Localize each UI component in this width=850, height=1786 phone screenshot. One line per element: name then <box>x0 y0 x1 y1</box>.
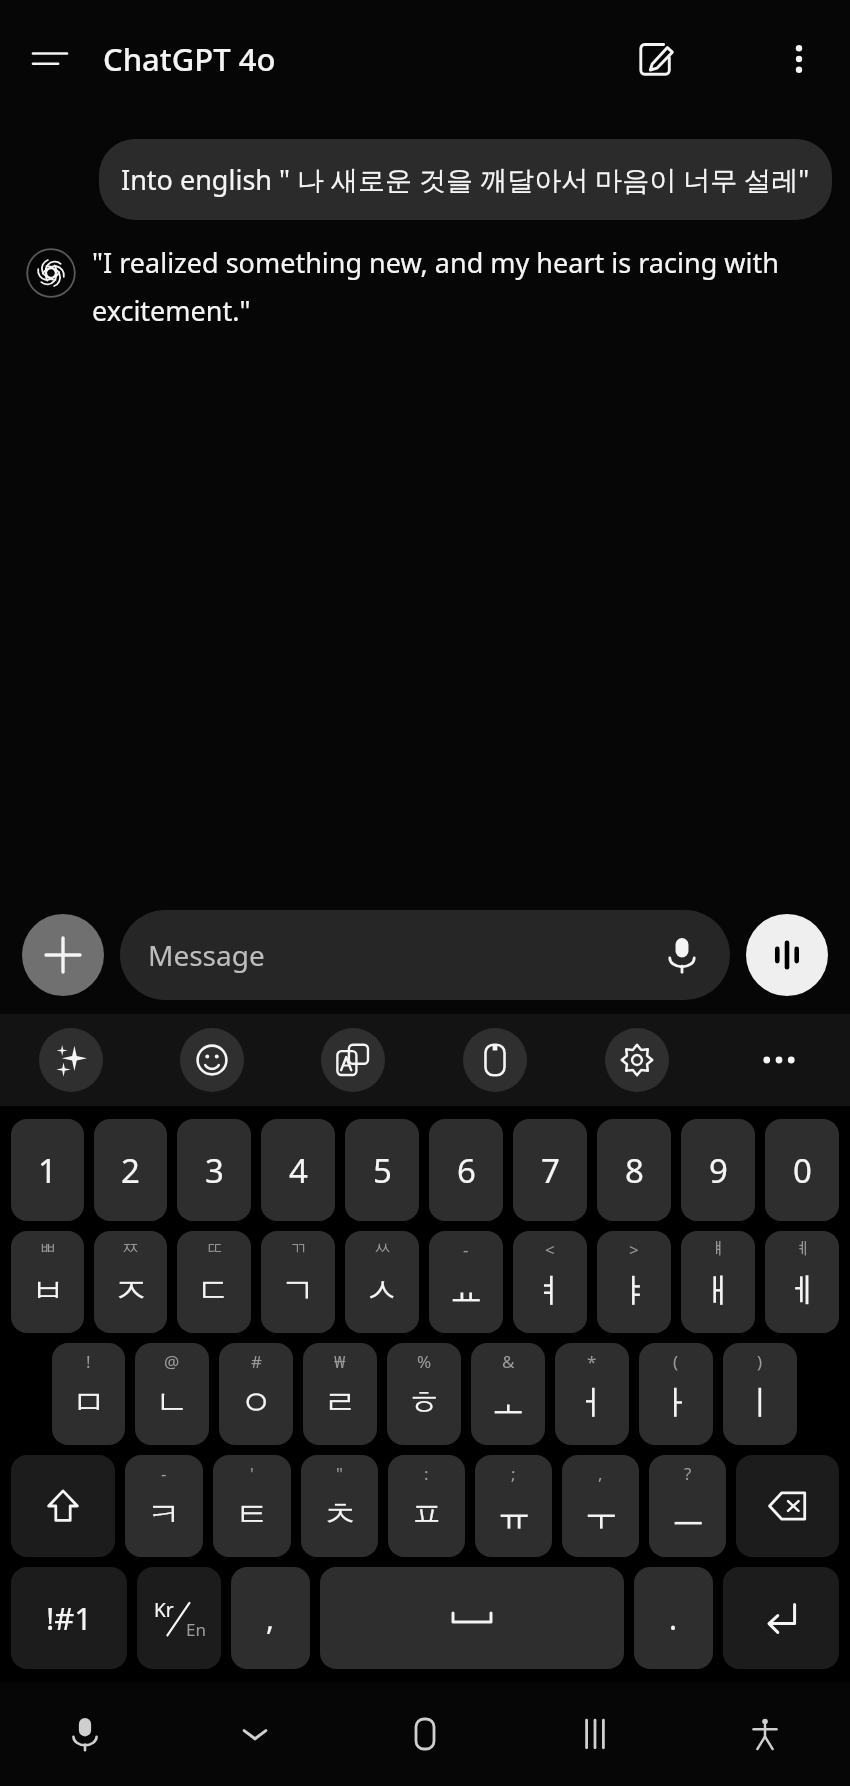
button[interactable]: More options <box>768 28 830 90</box>
button[interactable]: Keyboard settings <box>605 1028 669 1092</box>
button[interactable]: Shift <box>11 1455 115 1557</box>
staticText: ( <box>673 1350 679 1373</box>
button[interactable]: 0 <box>765 1119 839 1221</box>
button[interactable]: 2 <box>94 1119 167 1221</box>
button[interactable]: Voice input <box>656 929 708 981</box>
button[interactable]: Menu <box>20 29 80 89</box>
button[interactable]: New chat <box>622 25 690 93</box>
staticText: Into english " 나 새로운 것을 깨달아서 마음이 너무 설레" <box>121 161 810 198</box>
button[interactable]: ㅒ <box>681 1231 755 1333</box>
staticText: ㅡ <box>671 1493 705 1536</box>
staticText: ㄸ <box>206 1238 223 1259</box>
staticText: 8 <box>625 1148 644 1193</box>
button[interactable]: . <box>634 1567 713 1669</box>
staticText: @ <box>164 1350 180 1373</box>
staticText: 2 <box>121 1148 140 1193</box>
button[interactable]: % <box>387 1343 461 1445</box>
button[interactable]: 8 <box>597 1119 671 1221</box>
button[interactable]: < <box>513 1231 587 1333</box>
staticText: , <box>266 1598 275 1639</box>
staticText: % <box>417 1350 432 1373</box>
staticText: ㅠ <box>497 1493 531 1536</box>
button[interactable]: Emoji <box>180 1028 244 1092</box>
button[interactable]: " <box>301 1455 378 1557</box>
staticText: Message <box>148 936 656 974</box>
staticText: < <box>545 1238 555 1261</box>
staticText: - <box>161 1462 167 1485</box>
button[interactable]: Message <box>120 910 730 1000</box>
staticText: 9 <box>709 1148 728 1193</box>
button[interactable]: ㅆ <box>345 1231 419 1333</box>
staticText: & <box>502 1350 515 1373</box>
button[interactable]: Translate <box>321 1028 385 1092</box>
button[interactable]: & <box>471 1343 545 1445</box>
staticText: ㅃ <box>39 1238 56 1259</box>
button[interactable]: Clipboard <box>463 1028 527 1092</box>
button[interactable]: 9 <box>681 1119 755 1221</box>
button[interactable]: @ <box>135 1343 209 1445</box>
staticText: "I realized something new, and my heart … <box>92 244 826 329</box>
staticText: ㅋ <box>147 1493 181 1536</box>
button[interactable]: ㅉ <box>94 1231 167 1333</box>
button[interactable]: ( <box>639 1343 713 1445</box>
button[interactable]: Voice mode <box>746 914 828 996</box>
staticText: ㅏ <box>659 1381 693 1424</box>
button[interactable]: Home <box>340 1682 510 1786</box>
button[interactable]: 3 <box>177 1119 251 1221</box>
staticText: ChatGPT 4o <box>103 38 276 80</box>
button[interactable]: Add attachment <box>22 914 104 996</box>
button[interactable]: Voice typing <box>0 1682 170 1786</box>
staticText: * <box>587 1350 597 1373</box>
staticText: ㅈ <box>114 1269 148 1312</box>
button[interactable]: > <box>597 1231 671 1333</box>
button[interactable]: Hide keyboard <box>170 1682 340 1786</box>
button[interactable]: - <box>429 1231 503 1333</box>
button[interactable]: ㄸ <box>177 1231 251 1333</box>
button[interactable]: ₩ <box>303 1343 377 1445</box>
staticText: ) <box>757 1350 763 1373</box>
button[interactable]: Accessibility <box>680 1682 850 1786</box>
staticText: " <box>336 1462 343 1485</box>
staticText: ㅁ <box>72 1381 106 1424</box>
button[interactable]: ! <box>52 1343 125 1445</box>
button[interactable]: * <box>555 1343 629 1445</box>
button[interactable]: 7 <box>513 1119 587 1221</box>
button[interactable]: !#1 <box>11 1567 127 1669</box>
button[interactable]: 6 <box>429 1119 503 1221</box>
button[interactable]: ? <box>649 1455 726 1557</box>
button[interactable]: # <box>219 1343 293 1445</box>
staticText: ㅉ <box>122 1238 139 1259</box>
button[interactable]: ㅃ <box>11 1231 84 1333</box>
button[interactable]: , <box>231 1567 310 1669</box>
button[interactable]: : <box>388 1455 465 1557</box>
staticText: ㅑ <box>617 1269 651 1312</box>
button[interactable]: Into english " 나 새로운 것을 깨달아서 마음이 너무 설레" <box>99 139 832 220</box>
staticText: ㄴ <box>155 1381 189 1424</box>
button[interactable]: Recent apps <box>510 1682 680 1786</box>
staticText: ' <box>250 1462 254 1485</box>
button[interactable]: More keyboard options <box>708 1014 850 1106</box>
button[interactable]: ) <box>723 1343 797 1445</box>
button[interactable]: , <box>562 1455 639 1557</box>
staticText: ㅌ <box>235 1493 269 1536</box>
button[interactable]: ㅖ <box>765 1231 839 1333</box>
button[interactable]: Switch language <box>137 1567 221 1669</box>
staticText: 6 <box>457 1148 476 1193</box>
staticText: ㅅ <box>365 1269 399 1312</box>
button[interactable]: Backspace <box>736 1455 839 1557</box>
staticText: ㄱ <box>281 1269 315 1312</box>
staticText: ㅗ <box>491 1381 525 1424</box>
button[interactable]: Space <box>320 1567 624 1669</box>
button[interactable]: ㄲ <box>261 1231 335 1333</box>
staticText: ! <box>86 1350 91 1373</box>
button[interactable]: ; <box>475 1455 552 1557</box>
button[interactable]: 5 <box>345 1119 419 1221</box>
button[interactable]: Writing assist <box>39 1028 103 1092</box>
button[interactable]: ' <box>213 1455 291 1557</box>
button[interactable]: 4 <box>261 1119 335 1221</box>
button[interactable]: - <box>125 1455 203 1557</box>
staticText: 7 <box>541 1148 560 1193</box>
button[interactable]: 1 <box>11 1119 84 1221</box>
staticText: ㅖ <box>794 1238 811 1259</box>
button[interactable]: Enter <box>723 1567 839 1669</box>
